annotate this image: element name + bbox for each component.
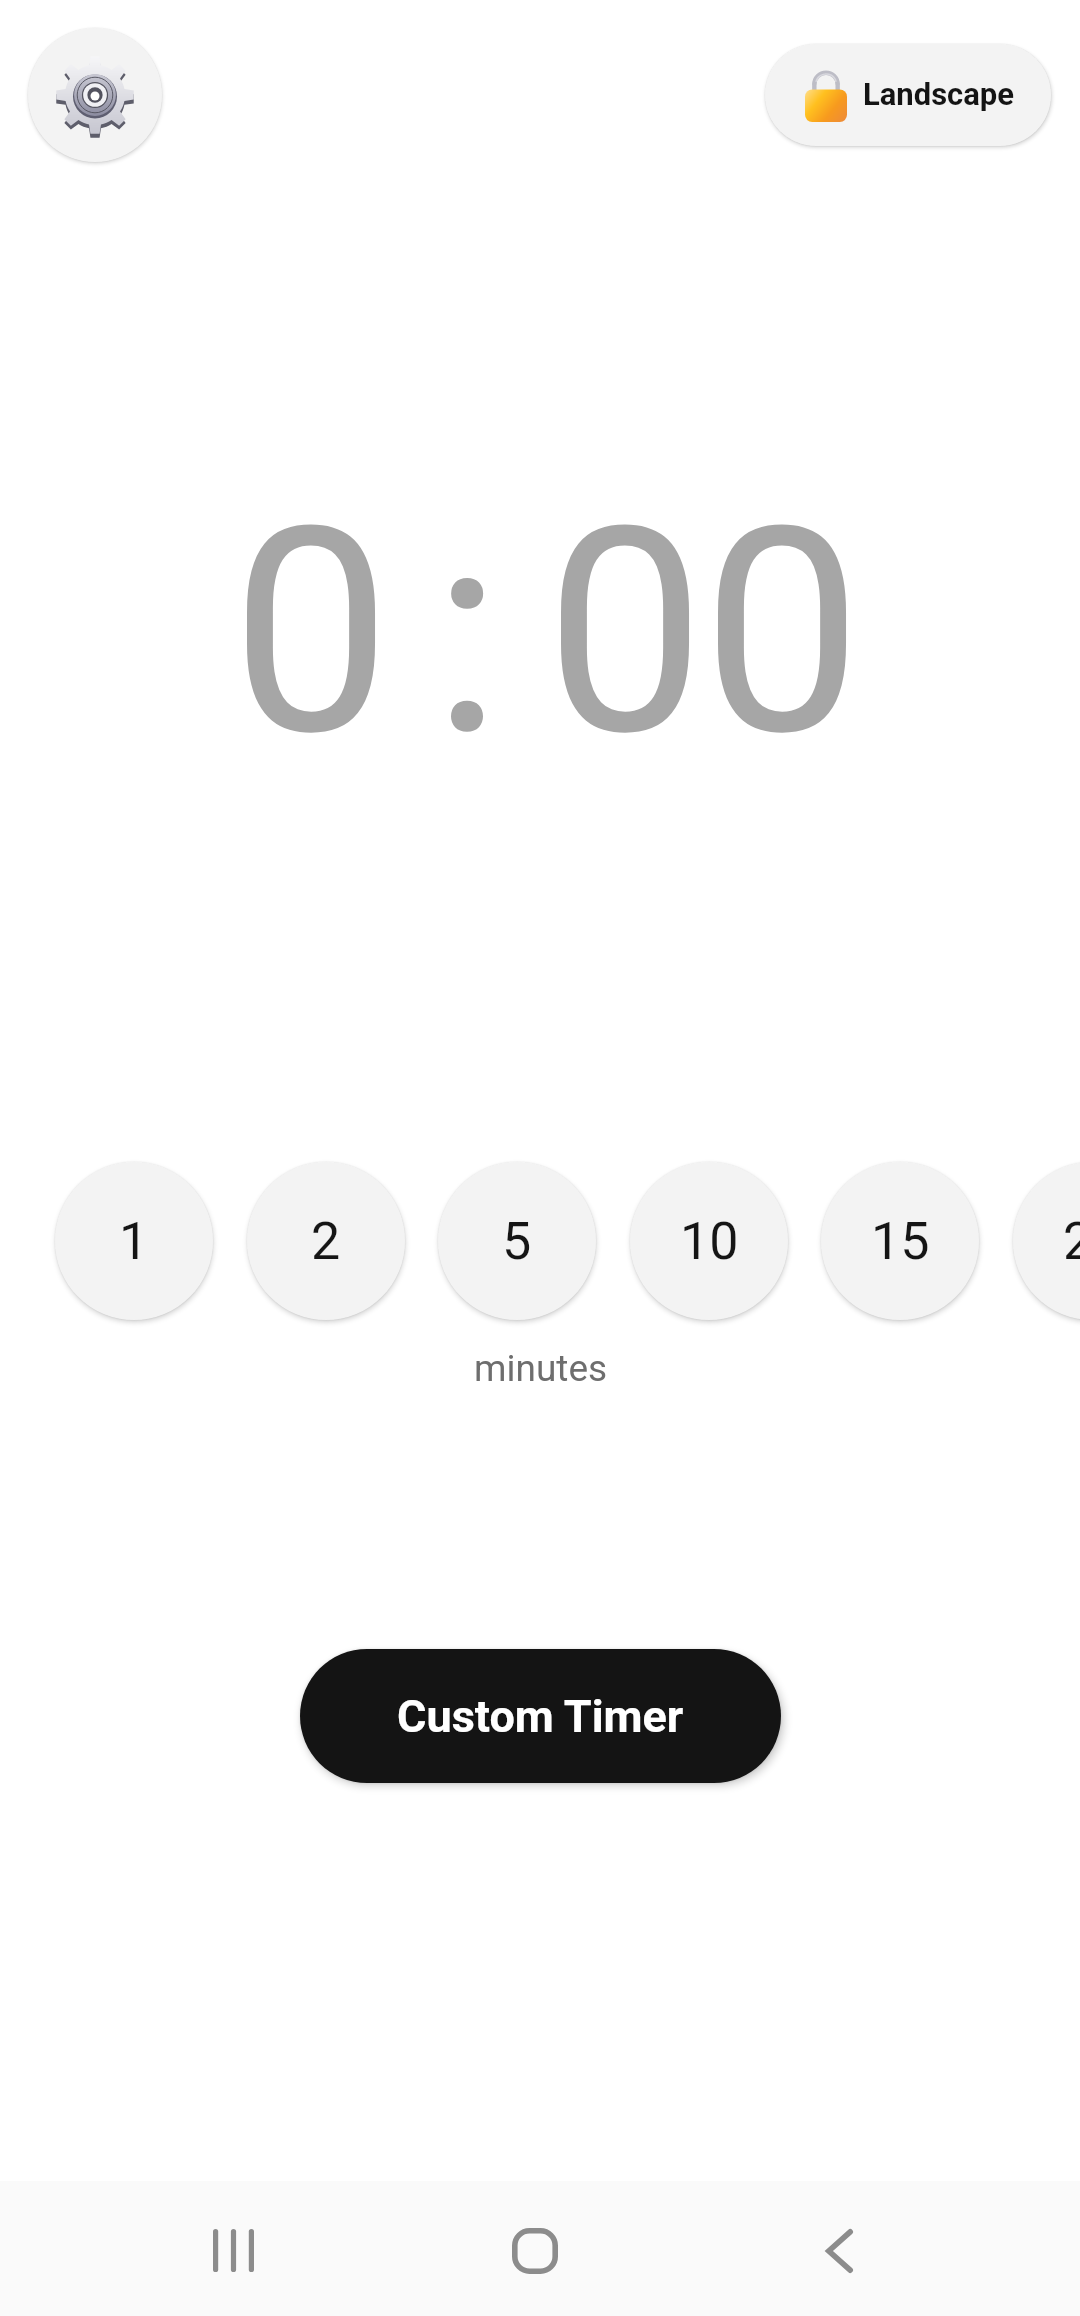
staticText: : (432, 466, 502, 800)
staticText: 1 (119, 1211, 149, 1272)
button[interactable]: Custom Timer (300, 1649, 781, 1783)
button[interactable]: 20 (1013, 1162, 1080, 1320)
staticText: 20 (1063, 1211, 1080, 1272)
button[interactable]: Home (382, 2185, 687, 2316)
button[interactable]: Settings (28, 28, 162, 162)
staticText: 0 (545, 466, 702, 800)
button[interactable]: 1 (55, 1162, 213, 1320)
staticText: 0 (231, 466, 388, 800)
button[interactable]: Back (687, 2185, 992, 2316)
button[interactable]: 15 (821, 1162, 979, 1320)
button[interactable]: Recent apps (76, 2185, 382, 2316)
staticText: Custom Timer (397, 1690, 684, 1743)
staticText: 15 (871, 1211, 930, 1272)
button[interactable]: 2 (247, 1162, 405, 1320)
staticText: 5 (502, 1211, 532, 1272)
staticText: 10 (680, 1211, 739, 1272)
button[interactable]: Landscape (765, 44, 1051, 146)
staticText: 2 (311, 1211, 341, 1272)
staticText: 0 (702, 466, 859, 800)
button[interactable]: 10 (630, 1162, 788, 1320)
staticText: Landscape (863, 76, 1015, 112)
staticText: minutes (474, 1347, 608, 1390)
button[interactable]: 5 (438, 1162, 596, 1320)
